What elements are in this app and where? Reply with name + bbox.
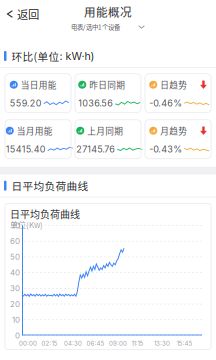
staticText: 06:45 bbox=[86, 340, 104, 347]
staticText: 环比(单位 bbox=[11, 48, 59, 64]
button[interactable]: 当月用能 bbox=[5, 120, 71, 159]
staticText: 用能概况 bbox=[84, 3, 132, 20]
staticText: 20 bbox=[10, 299, 20, 309]
button[interactable]: 月趋势 bbox=[145, 120, 211, 159]
staticText: 40 bbox=[10, 268, 20, 277]
button[interactable]: 返回 bbox=[0, 3, 47, 25]
staticText: 10 bbox=[12, 315, 20, 325]
button[interactable]: 电表/选中1个设备 bbox=[71, 22, 145, 32]
staticText: -0.46% bbox=[149, 98, 182, 109]
button[interactable]: 当日用能 bbox=[5, 74, 71, 113]
button[interactable]: 昨日同期 bbox=[75, 74, 141, 113]
staticText: 电表/选中1个设备 bbox=[71, 22, 120, 31]
staticText: : kW·h) bbox=[59, 49, 94, 62]
staticText: 日平均负荷曲线 bbox=[10, 207, 80, 221]
staticText: 上月同期 bbox=[87, 124, 123, 137]
staticText: 1036.56 bbox=[78, 98, 113, 109]
staticText: 50 bbox=[10, 252, 20, 262]
button[interactable]: 日趋势 bbox=[145, 74, 211, 113]
staticText: 月趋势 bbox=[160, 124, 187, 137]
staticText: 昨日同期 bbox=[89, 78, 125, 91]
staticText: 单位(Kw) bbox=[10, 219, 43, 230]
staticText: 返回 bbox=[17, 6, 39, 22]
staticText: 27145.76 bbox=[76, 144, 115, 155]
staticText: 15415.40 bbox=[6, 144, 46, 155]
staticText: 日平均负荷曲线 bbox=[11, 178, 88, 193]
staticText: 60 bbox=[10, 236, 20, 246]
staticText: 0 bbox=[15, 331, 20, 340]
staticText: 04:30 bbox=[64, 340, 82, 347]
staticText: 09:00 bbox=[109, 340, 127, 347]
staticText: 559.20 bbox=[10, 98, 42, 109]
staticText: 当月用能 bbox=[17, 124, 53, 137]
staticText: 00:00 bbox=[19, 340, 37, 347]
staticText: 02:15 bbox=[41, 340, 57, 347]
button[interactable]: 上月同期 bbox=[75, 120, 141, 159]
staticText: 30 bbox=[10, 283, 20, 293]
staticText: 15:45 bbox=[176, 340, 192, 347]
staticText: 13:30 bbox=[154, 340, 170, 347]
staticText: 当日用能 bbox=[21, 78, 57, 91]
staticText: 日趋势 bbox=[160, 78, 187, 91]
staticText: 70 bbox=[11, 221, 20, 230]
staticText: -0.43% bbox=[149, 144, 182, 155]
staticText: 11:15 bbox=[131, 340, 143, 347]
